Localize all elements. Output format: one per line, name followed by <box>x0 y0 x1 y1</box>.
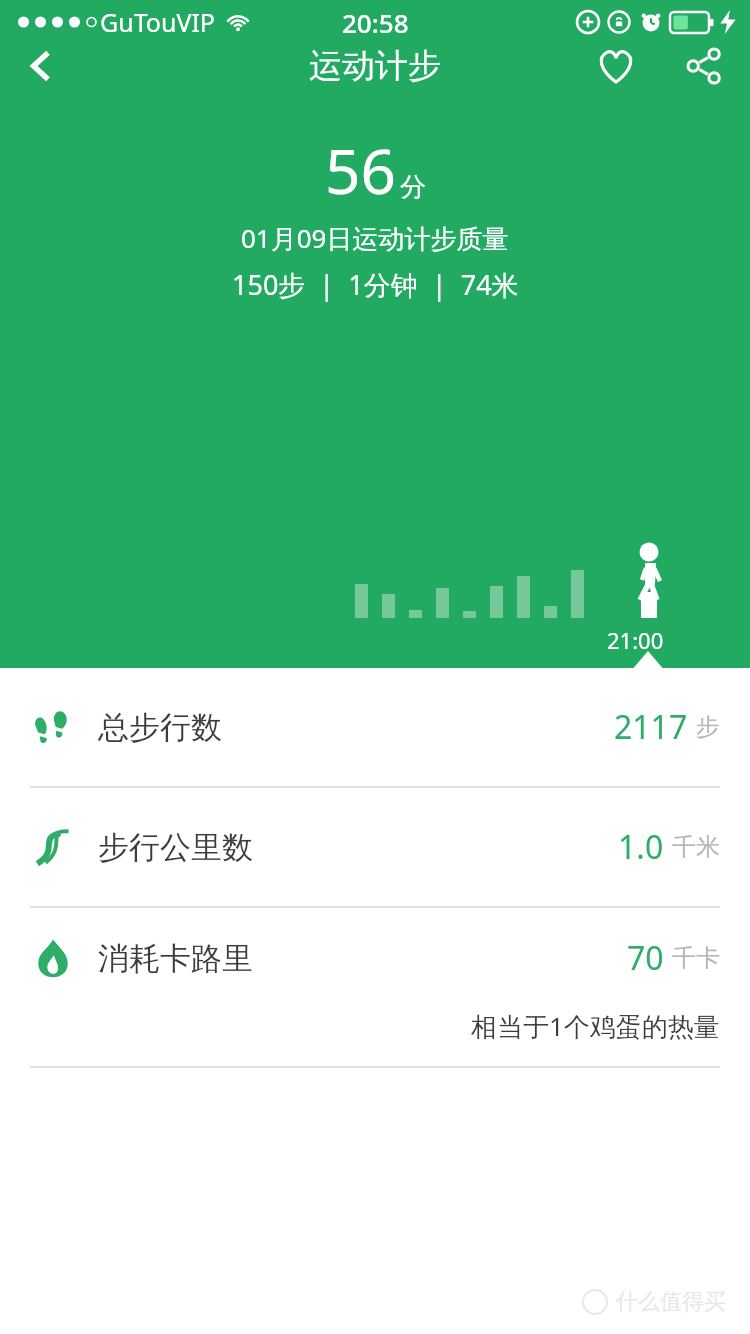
staticText: 步行公里数 <box>98 828 253 867</box>
staticText: 01月09日运动计步质量 <box>241 220 509 256</box>
staticText: 分 <box>400 171 426 204</box>
button[interactable]: Back <box>10 44 74 88</box>
button[interactable]: Share <box>672 44 736 88</box>
staticText: 相当于1个鸡蛋的热量 <box>471 1008 720 1044</box>
button[interactable]: 消耗卡路里 <box>0 908 750 1066</box>
button[interactable]: Favorite <box>584 44 648 88</box>
staticText: 150步 | 1分钟 | 74米 <box>232 266 519 303</box>
staticText: GuTouVIP <box>100 5 215 39</box>
staticText: 千米 <box>672 832 720 862</box>
staticText: 2117 <box>614 705 688 749</box>
staticText: 70 <box>627 936 664 980</box>
staticText: 1.0 <box>618 825 664 869</box>
staticText: 总步行数 <box>98 708 222 747</box>
staticText: 21:00 <box>607 625 664 655</box>
staticText: 什么值得买 <box>616 1288 726 1316</box>
staticText: 千卡 <box>672 943 720 973</box>
button[interactable]: 总步行数 <box>0 668 750 786</box>
staticText: 20:58 <box>342 5 409 40</box>
staticText: 运动计步 <box>309 45 441 87</box>
staticText: 56 <box>325 128 396 212</box>
staticText: 消耗卡路里 <box>98 939 253 978</box>
button[interactable]: 步行公里数 <box>0 788 750 906</box>
staticText: 步 <box>696 712 720 742</box>
